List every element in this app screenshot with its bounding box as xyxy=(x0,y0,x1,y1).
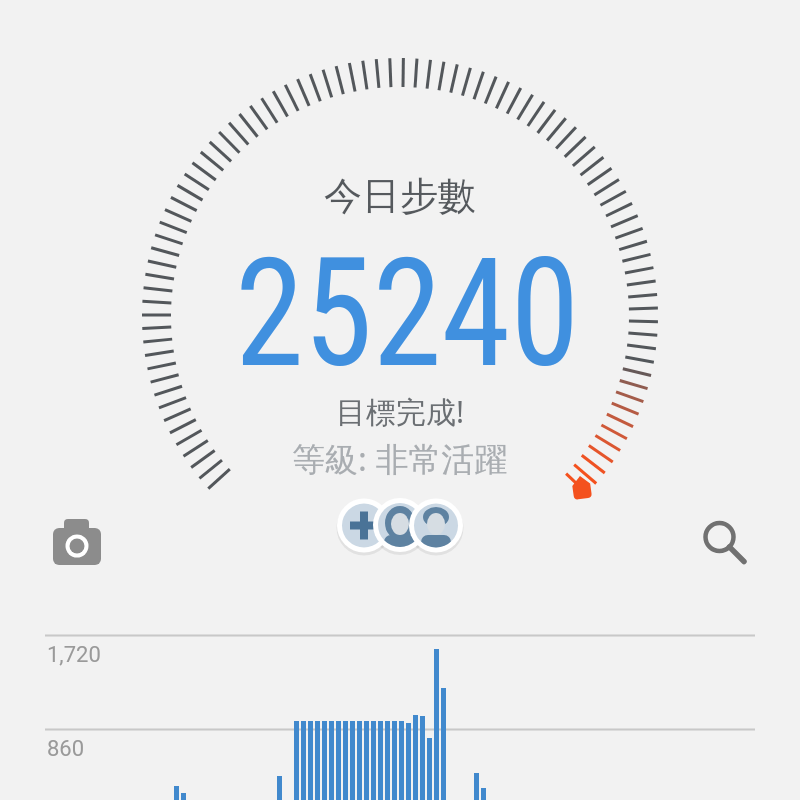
staticText: 1,720 xyxy=(47,642,101,668)
staticText: 25240 xyxy=(235,226,580,386)
staticText: 今日步數 xyxy=(324,172,476,220)
button[interactable] xyxy=(45,510,107,572)
staticText: 860 xyxy=(47,736,85,762)
button[interactable] xyxy=(692,510,748,566)
staticText: 目標完成! xyxy=(336,391,465,432)
button[interactable] xyxy=(334,495,466,556)
staticText: 等級: 非常活躍 xyxy=(292,436,508,481)
